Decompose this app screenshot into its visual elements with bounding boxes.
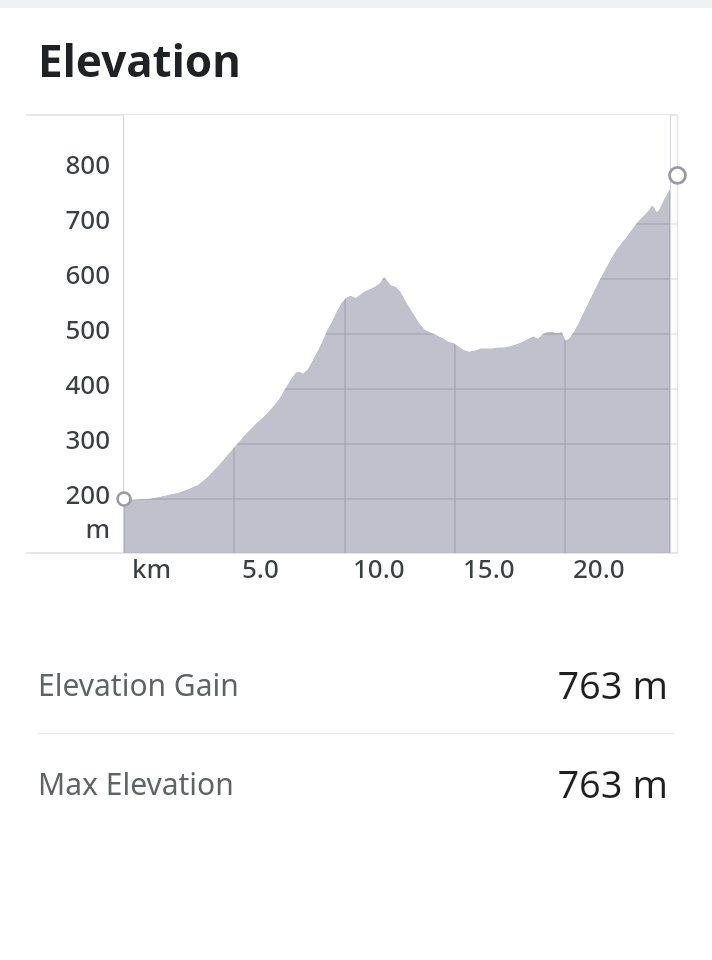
other: Elevation profile chart — [0, 107, 712, 587]
staticText: 763 m — [557, 757, 668, 809]
staticText: Elevation Gain — [38, 664, 239, 705]
staticText: 300 — [0, 421, 110, 456]
staticText: 5.0 — [242, 550, 279, 585]
staticText: 15.0 — [463, 550, 515, 585]
staticText: 800 — [0, 146, 110, 181]
staticText: 763 m — [557, 658, 668, 710]
button[interactable]: Max Elevation — [0, 734, 712, 832]
staticText: Elevation — [38, 30, 241, 90]
staticText: 700 — [0, 201, 110, 236]
staticText: Max Elevation — [38, 763, 234, 804]
button[interactable]: Elevation Gain — [0, 635, 712, 733]
staticText: km — [132, 550, 172, 585]
staticText: 400 — [0, 366, 110, 401]
staticText: 600 — [0, 256, 110, 291]
staticText: m — [0, 510, 110, 545]
staticText: 10.0 — [353, 550, 405, 585]
staticText: 200 — [0, 476, 110, 511]
staticText: 500 — [0, 311, 110, 346]
staticText: 20.0 — [573, 550, 625, 585]
